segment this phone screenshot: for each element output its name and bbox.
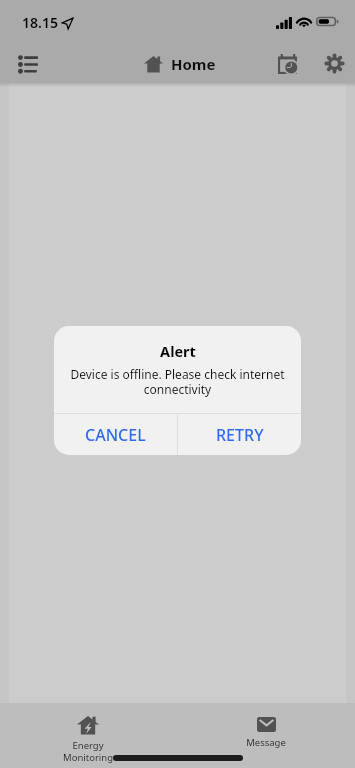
staticText: Device is offline. Please check internet… xyxy=(68,366,287,397)
button[interactable]: Energy Monitoring xyxy=(48,715,128,764)
staticText: Alert xyxy=(160,341,196,361)
button[interactable]: Message xyxy=(231,717,301,749)
staticText: 18.15 xyxy=(22,13,58,32)
staticText: Message xyxy=(246,736,286,749)
button[interactable]: Menu xyxy=(9,45,47,83)
staticText: RETRY xyxy=(216,424,264,446)
button[interactable]: Settings xyxy=(313,44,355,83)
staticText: Home xyxy=(171,54,216,74)
button[interactable]: RETRY xyxy=(178,414,301,455)
button[interactable]: CANCEL xyxy=(54,414,177,455)
staticText: CANCEL xyxy=(85,424,146,446)
button[interactable]: Schedule xyxy=(271,44,313,83)
staticText: Energy Monitoring xyxy=(63,739,113,764)
